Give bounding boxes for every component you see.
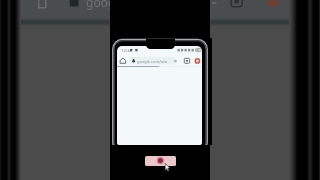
staticText: 12:34	[121, 48, 132, 54]
button[interactable]: Record	[145, 156, 176, 166]
staticText: goog	[86, 0, 116, 10]
staticText: google.com/sea	[137, 59, 168, 64]
